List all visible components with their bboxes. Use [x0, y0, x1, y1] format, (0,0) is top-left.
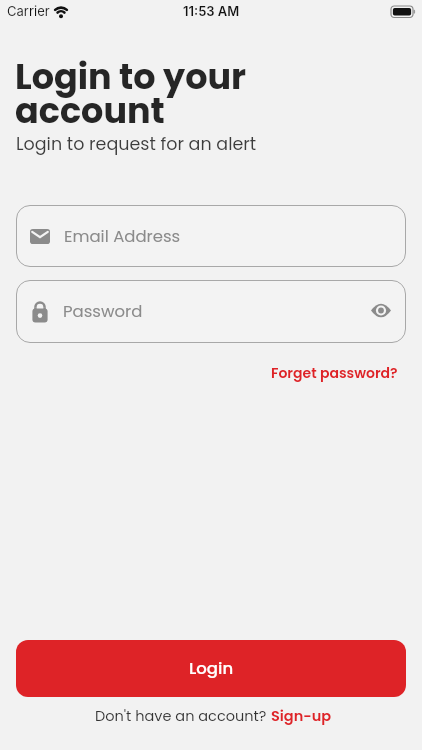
- button[interactable]: Sign-up: [271, 706, 332, 726]
- staticText: Email Address: [64, 225, 181, 248]
- staticText: Login to request for an alert: [16, 132, 257, 157]
- staticText: Carrier: [7, 3, 50, 19]
- button[interactable]: Email Address: [16, 205, 406, 267]
- button[interactable]: Password: [16, 280, 406, 343]
- button[interactable]: Forget password?: [271, 363, 398, 383]
- staticText: Password: [63, 300, 143, 323]
- button[interactable]: Login: [16, 640, 406, 697]
- staticText: Don't have an account?: [95, 706, 271, 726]
- staticText: Login: [189, 657, 234, 680]
- staticText: 11:53 AM: [183, 3, 240, 19]
- button[interactable]: [371, 303, 391, 318]
- staticText: Login to your account: [15, 52, 247, 136]
